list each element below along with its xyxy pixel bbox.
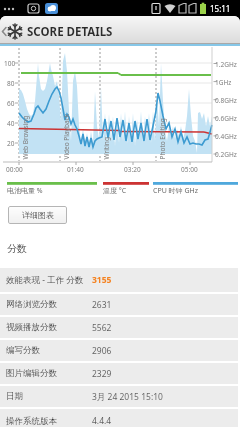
staticText: 2329 — [92, 368, 112, 380]
staticText: Photo Editing — [157, 117, 166, 159]
staticText: 00:00 — [6, 165, 23, 174]
staticText: 05:00 — [181, 165, 198, 174]
staticText: 1.2GHz — [215, 60, 237, 69]
button[interactable]: 详细图表 — [8, 206, 67, 224]
button[interactable]: 操作系统版本 — [0, 409, 238, 427]
staticText: Writing — [101, 136, 110, 159]
staticText: 0.8GHz — [215, 96, 237, 105]
staticText: 视频播放分数 — [6, 322, 57, 333]
staticText: 01:40 — [67, 165, 84, 174]
staticText: 电池电量 % — [7, 186, 43, 196]
button[interactable]: 日期 — [0, 386, 238, 407]
staticText: Video Playback — [61, 113, 70, 159]
button[interactable]: 效能表现 - 工作 分数 — [0, 268, 238, 292]
button[interactable]: 网络浏览分数 — [0, 294, 238, 315]
button[interactable]: 视频播放分数 — [0, 317, 238, 338]
staticText: 详细图表 — [22, 210, 54, 220]
staticText: 40 — [7, 119, 15, 128]
staticText: 5562 — [92, 322, 112, 334]
staticText: 15:11 — [210, 3, 231, 14]
staticText: Web Browsing — [20, 115, 29, 159]
staticText: CPU 时钟 GHz — [153, 186, 198, 196]
staticText: 温度 °C — [103, 186, 127, 196]
staticText: 效能表现 - 工作 分数 — [6, 274, 84, 286]
staticText: 1GHz — [215, 78, 232, 87]
staticText: 3155 — [92, 274, 112, 286]
staticText: SCORE DETAILS — [27, 24, 113, 40]
staticText: 日期 — [6, 391, 23, 402]
staticText: 100 — [4, 59, 16, 68]
staticText: 2906 — [92, 345, 112, 357]
staticText: 3月 24 2015 15:10 — [92, 391, 163, 403]
staticText: 60 — [7, 99, 15, 108]
staticText: 0.6GHz — [215, 114, 237, 123]
staticText: 4.4.4 — [92, 415, 112, 427]
staticText: 操作系统版本 — [6, 416, 57, 427]
staticText: 0.4GHz — [215, 132, 237, 141]
button[interactable]: 编写分数 — [0, 340, 238, 361]
button[interactable]: SCORE DETAILS — [0, 16, 240, 44]
staticText: 80 — [7, 79, 15, 88]
staticText: 0.2GHz — [215, 150, 237, 159]
staticText: 编写分数 — [6, 345, 40, 356]
staticText: 图片编辑分数 — [6, 368, 57, 379]
staticText: 2631 — [92, 299, 112, 311]
staticText: 20 — [7, 139, 15, 148]
staticText: 网络浏览分数 — [6, 299, 57, 310]
staticText: 03:20 — [124, 165, 141, 174]
button[interactable]: 图片编辑分数 — [0, 363, 238, 384]
staticText: 分数 — [7, 242, 27, 255]
